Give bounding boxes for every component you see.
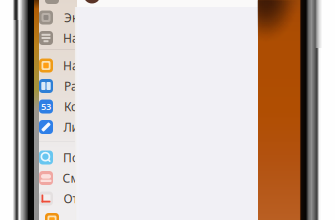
button[interactable]: Ра: [38, 76, 78, 96]
staticText: Ра: [64, 78, 78, 94]
staticText: На: [63, 30, 79, 46]
button[interactable]: На: [38, 28, 78, 48]
button[interactable]: 53: [38, 96, 78, 116]
button[interactable]: На: [38, 55, 78, 75]
staticText: По: [63, 149, 79, 165]
button[interactable]: От: [38, 188, 78, 208]
button[interactable]: См: [38, 168, 78, 188]
staticText: На: [63, 57, 79, 73]
staticText: Эк: [64, 9, 78, 25]
button[interactable]: По: [38, 147, 78, 167]
button[interactable]: Эк: [38, 7, 78, 27]
button[interactable]: Ли: [38, 117, 78, 137]
staticText: Ко: [64, 98, 78, 114]
staticText: См: [62, 170, 79, 186]
staticText: От: [63, 190, 78, 206]
staticText: 53: [41, 100, 51, 113]
staticText: Ли: [63, 119, 78, 135]
